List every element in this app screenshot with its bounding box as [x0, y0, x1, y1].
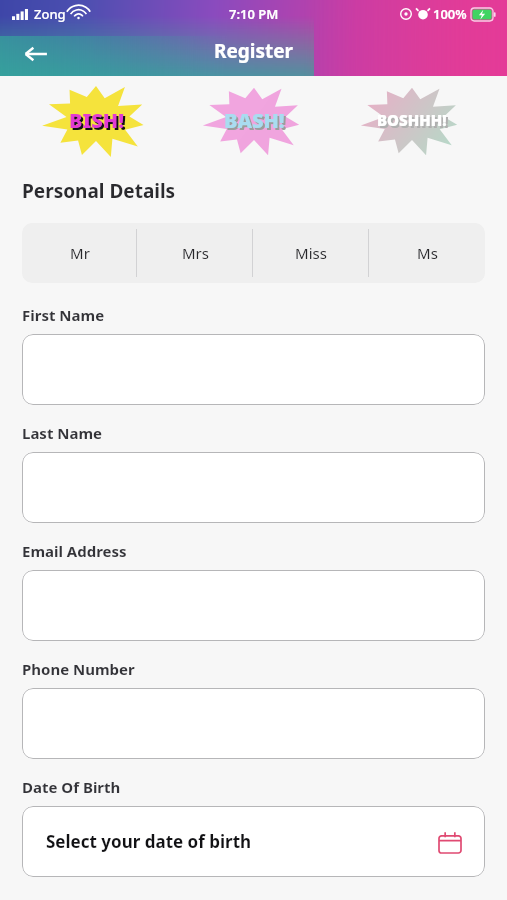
staticText: Register [214, 38, 294, 64]
staticText: Mr [70, 243, 90, 263]
staticText: Miss [295, 243, 327, 263]
button[interactable] [22, 452, 485, 523]
staticText: 7:10 PM [229, 5, 279, 23]
button[interactable]: Mr [22, 223, 137, 283]
button[interactable]: Mrs [137, 223, 253, 283]
staticText: Email Address [22, 541, 127, 561]
staticText: BISH! [69, 107, 124, 134]
staticText: First Name [22, 305, 105, 325]
button[interactable]: Select your date of birth [22, 806, 485, 877]
staticText: BOSHHH! [377, 110, 447, 130]
staticText: BASH! [224, 107, 285, 134]
button[interactable] [22, 570, 485, 641]
staticText: Ms [417, 243, 438, 263]
staticText: BOSHHH! [379, 112, 449, 132]
staticText: Mrs [182, 243, 209, 263]
staticText: Phone Number [22, 659, 135, 679]
staticText: Zong [34, 5, 66, 23]
staticText: 100% [433, 5, 467, 23]
staticText: BISH! [71, 109, 126, 136]
button[interactable]: Back [14, 32, 58, 76]
staticText: Last Name [22, 423, 103, 443]
staticText: BASH! [226, 109, 287, 136]
staticText: Select your date of birth [46, 830, 439, 853]
button[interactable]: Miss [253, 223, 369, 283]
button[interactable] [22, 334, 485, 405]
staticText: Personal Details [22, 178, 176, 204]
button[interactable]: Ms [369, 223, 485, 283]
staticText: Date Of Birth [22, 777, 121, 797]
button[interactable] [22, 688, 485, 759]
